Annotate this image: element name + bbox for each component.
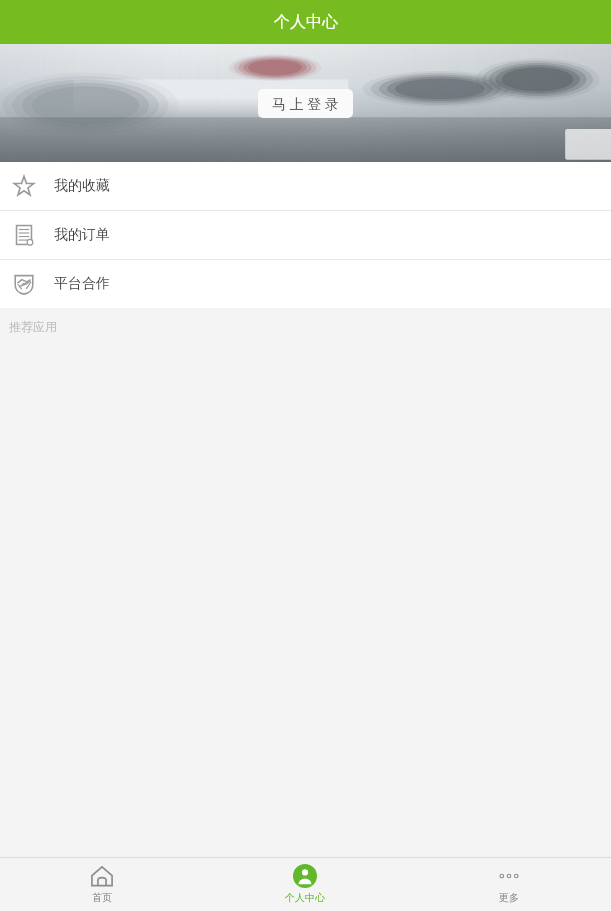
button[interactable]: 平台合作	[0, 260, 611, 308]
other: 首页	[90, 864, 114, 888]
other: 我的收藏	[13, 175, 35, 197]
staticText: 马 上 登 录	[272, 94, 339, 113]
button[interactable]: 首页	[0, 857, 203, 911]
other: 更多	[497, 864, 521, 888]
other: 平台合作	[13, 273, 35, 295]
staticText: 首页	[92, 891, 112, 904]
button[interactable]: 我的收藏	[0, 162, 611, 210]
staticText: 个人中心	[274, 12, 338, 32]
button[interactable]: 马 上 登 录	[258, 89, 353, 118]
staticText: 我的订单	[54, 226, 110, 244]
staticText: 推荐应用	[9, 319, 57, 334]
staticText: 我的收藏	[54, 177, 110, 195]
button[interactable]: 更多	[407, 857, 611, 911]
button[interactable]: 个人中心	[203, 857, 407, 911]
other: 个人中心	[293, 864, 317, 888]
staticText: 平台合作	[54, 275, 110, 293]
staticText: 更多	[499, 891, 519, 904]
other: 我的订单	[13, 224, 35, 246]
staticText: 个人中心	[285, 891, 325, 904]
button[interactable]: 我的订单	[0, 211, 611, 259]
